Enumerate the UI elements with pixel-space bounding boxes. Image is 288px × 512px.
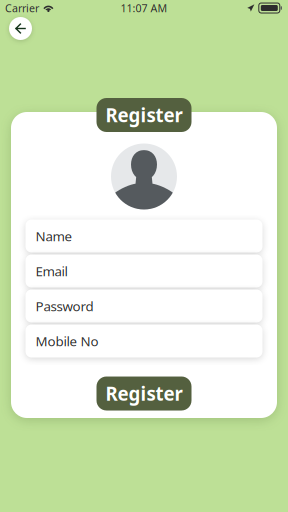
staticText: Carrier bbox=[5, 1, 39, 15]
staticText: Mobile No bbox=[35, 332, 98, 350]
staticText: Email bbox=[35, 262, 67, 280]
button[interactable]: Name bbox=[25, 219, 262, 252]
staticText: Register bbox=[105, 381, 182, 406]
staticText: Name bbox=[35, 227, 72, 245]
staticText: 11:07 AM bbox=[120, 1, 167, 15]
button[interactable]: Mobile No bbox=[25, 324, 262, 357]
button[interactable]: Register bbox=[96, 376, 191, 410]
button[interactable]: Back bbox=[9, 17, 32, 40]
button[interactable]: Register bbox=[96, 98, 191, 132]
button[interactable]: Password bbox=[25, 289, 262, 322]
staticText: Register bbox=[105, 103, 182, 127]
staticText: Password bbox=[35, 297, 93, 315]
button[interactable]: Email bbox=[25, 254, 262, 287]
